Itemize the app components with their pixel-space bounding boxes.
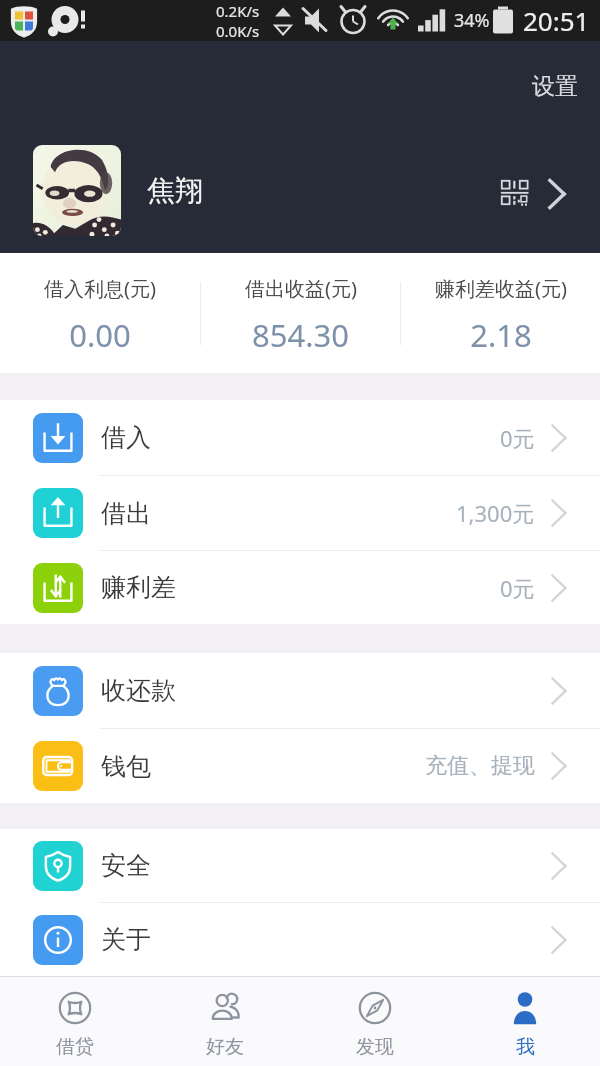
staticText: 发现 <box>356 1035 394 1059</box>
staticText: 好友 <box>206 1035 244 1059</box>
staticText: 我 <box>516 1035 535 1059</box>
button[interactable]: 安全 <box>0 829 600 902</box>
staticText: 34% <box>454 8 490 33</box>
staticText: 2.18 <box>470 314 532 356</box>
staticText: 0.00 <box>69 314 131 356</box>
staticText: 赚利差收益(元) <box>435 275 567 302</box>
staticText: 收还款 <box>101 675 176 706</box>
button[interactable]: Profile photo <box>33 145 121 236</box>
button[interactable]: 借出 <box>0 475 600 550</box>
staticText: 充值、提现 <box>425 752 535 780</box>
button[interactable]: 好友 <box>150 977 300 1066</box>
button[interactable]: 借贷 <box>0 977 150 1066</box>
staticText: 钱包 <box>101 751 151 782</box>
button[interactable]: 我 <box>450 977 600 1066</box>
staticText: 854.30 <box>252 314 349 356</box>
button[interactable]: 借入 <box>0 400 600 475</box>
button[interactable]: 赚利差 <box>0 550 600 624</box>
button[interactable]: Profile details <box>533 171 579 217</box>
button[interactable]: QR code <box>494 172 536 214</box>
staticText: 安全 <box>101 850 151 881</box>
staticText: 20:51 <box>523 3 590 38</box>
button[interactable]: 关于 <box>0 902 600 976</box>
staticText: 0元 <box>500 573 535 603</box>
staticText: 0.2K/s <box>216 1 260 21</box>
staticText: 关于 <box>101 924 151 955</box>
staticText: 赚利差 <box>101 572 176 603</box>
staticText: 借入利息(元) <box>44 275 156 302</box>
staticText: 借入 <box>101 422 151 453</box>
button[interactable]: 发现 <box>300 977 450 1066</box>
staticText: 焦翔 <box>147 173 203 208</box>
button[interactable]: 设置 <box>532 72 578 101</box>
staticText: 0.0K/s <box>216 21 260 41</box>
button[interactable]: 钱包 <box>0 728 600 803</box>
staticText: 借贷 <box>56 1035 94 1059</box>
button[interactable]: 收还款 <box>0 653 600 728</box>
staticText: 借出收益(元) <box>245 275 357 302</box>
staticText: 1,300元 <box>456 498 535 528</box>
staticText: 借出 <box>101 498 151 529</box>
staticText: 0元 <box>500 423 535 453</box>
